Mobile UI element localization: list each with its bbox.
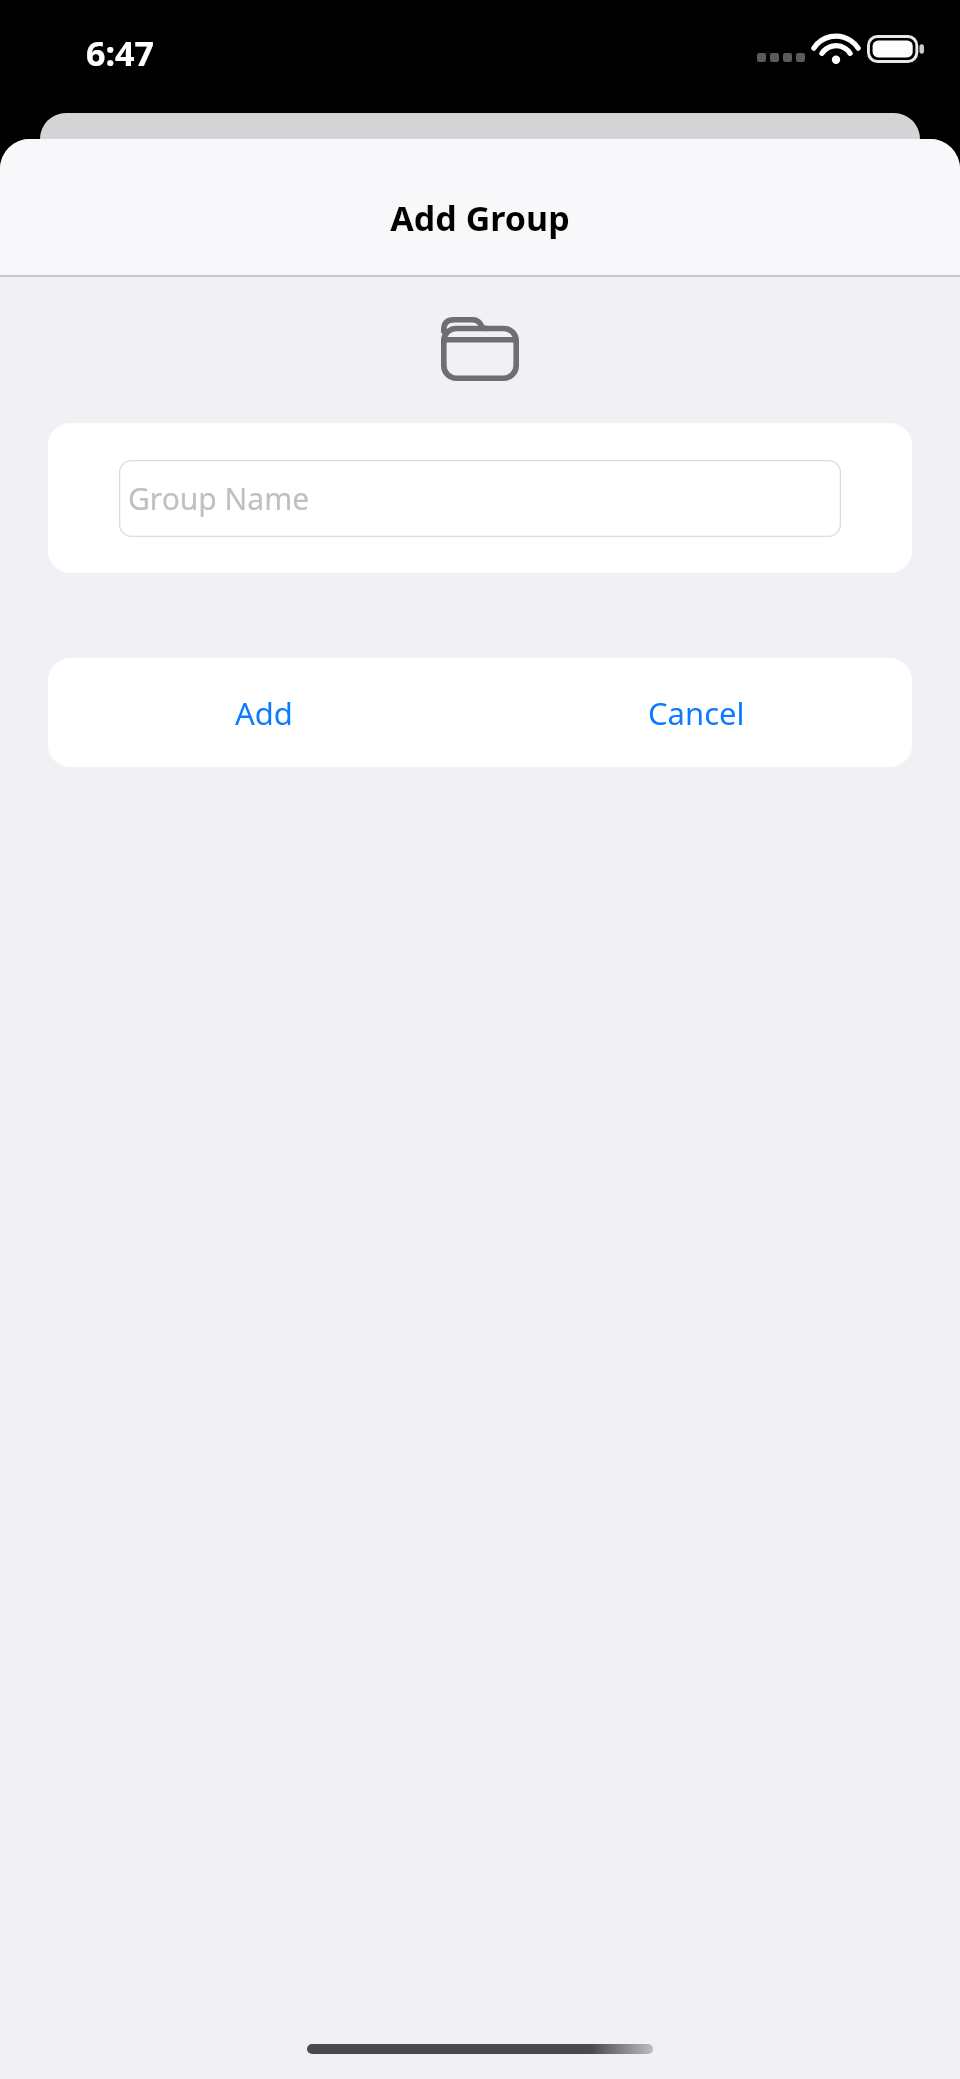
staticText: Cancel <box>648 692 745 734</box>
button[interactable]: Cancel <box>480 658 912 767</box>
staticText: Group Name <box>128 478 310 519</box>
other: Folder <box>441 317 519 381</box>
button[interactable]: Add <box>48 658 480 767</box>
staticText: Add <box>235 692 293 734</box>
staticText: 6:47 <box>86 30 154 76</box>
button[interactable]: Group Name <box>119 460 841 537</box>
staticText: Add Group <box>0 195 960 241</box>
